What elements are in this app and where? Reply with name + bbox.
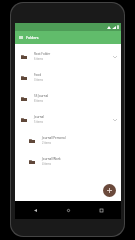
staticText: 2 items <box>42 141 51 145</box>
staticText: Journal/Personal <box>42 136 66 140</box>
button[interactable]: Recent apps <box>85 201 118 219</box>
button[interactable]: Home <box>52 201 85 219</box>
staticText: 6 items <box>34 57 43 61</box>
button[interactable]: Journal <box>15 109 121 130</box>
staticText: 3 items <box>34 78 43 82</box>
staticText: 4 items <box>42 162 51 166</box>
staticText: 8 items <box>34 99 43 103</box>
button[interactable]: Food <box>15 67 121 88</box>
button[interactable]: Journal/Work <box>15 151 121 172</box>
button[interactable]: Add folder <box>103 184 116 197</box>
button[interactable]: Journal/Personal <box>15 130 121 151</box>
staticText: 5 items <box>34 120 43 124</box>
button[interactable]: Back <box>18 201 52 219</box>
staticText: Root Folder <box>34 52 51 56</box>
staticText: SS Journal <box>34 94 49 98</box>
button[interactable]: Open navigation menu <box>16 33 25 42</box>
staticText: Journal <box>34 115 45 119</box>
staticText: Food <box>34 73 42 77</box>
button[interactable]: SS Journal <box>15 88 121 109</box>
staticText: Folders <box>26 35 39 40</box>
button[interactable]: Root Folder <box>15 46 121 67</box>
staticText: Journal/Work <box>42 157 61 161</box>
